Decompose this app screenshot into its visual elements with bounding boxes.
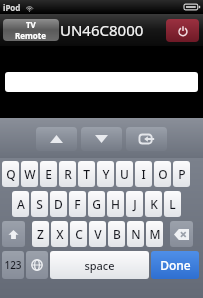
staticText: iPod: [3, 2, 21, 13]
button[interactable]: T: [78, 161, 95, 187]
button[interactable]: G: [88, 191, 105, 217]
staticText: F: [74, 196, 81, 212]
button[interactable]: Backspace: [170, 221, 193, 247]
staticText: Z: [37, 226, 44, 242]
button[interactable]: R: [59, 161, 76, 187]
button[interactable]: U: [116, 161, 133, 187]
button[interactable]: 123: [2, 251, 24, 279]
button[interactable]: C: [70, 221, 87, 247]
staticText: Q: [6, 166, 16, 182]
button[interactable]: I: [135, 161, 152, 187]
button[interactable]: Q: [2, 161, 19, 187]
staticText: H: [111, 196, 120, 212]
staticText: S: [36, 196, 43, 212]
button[interactable]: A: [12, 191, 29, 217]
button[interactable]: Next field: [81, 127, 122, 151]
button[interactable]: M: [146, 221, 163, 247]
button[interactable]: K: [145, 191, 162, 217]
button[interactable]: [5, 72, 198, 92]
button[interactable]: Shift: [2, 221, 25, 247]
staticText: P: [178, 166, 186, 182]
button[interactable]: P: [173, 161, 190, 187]
button[interactable]: S: [31, 191, 48, 217]
staticText: E: [45, 166, 52, 182]
button[interactable]: D: [50, 191, 67, 217]
staticText: 123: [4, 258, 22, 272]
button[interactable]: E: [40, 161, 57, 187]
staticText: L: [169, 196, 176, 212]
staticText: O: [158, 166, 168, 182]
staticText: B: [113, 226, 121, 242]
staticText: N: [131, 226, 141, 242]
staticText: C: [75, 226, 83, 242]
button[interactable]: F: [69, 191, 86, 217]
button[interactable]: O: [154, 161, 171, 187]
staticText: TV: [26, 19, 36, 30]
button[interactable]: Done: [151, 251, 199, 279]
staticText: U: [120, 166, 129, 182]
button[interactable]: space: [50, 251, 149, 279]
staticText: K: [150, 196, 158, 212]
staticText: X: [56, 226, 64, 242]
staticText: V: [94, 226, 102, 242]
button[interactable]: H: [107, 191, 124, 217]
staticText: T: [83, 166, 90, 182]
staticText: G: [92, 196, 101, 212]
button[interactable]: L: [164, 191, 181, 217]
button[interactable]: Z: [32, 221, 49, 247]
button[interactable]: Previous field: [36, 127, 77, 151]
button[interactable]: Y: [97, 161, 114, 187]
button[interactable]: TV: [3, 19, 59, 41]
staticText: I: [141, 166, 146, 182]
staticText: W: [24, 166, 36, 182]
button[interactable]: J: [126, 191, 143, 217]
button[interactable]: N: [127, 221, 144, 247]
button[interactable]: Power: [166, 19, 199, 42]
button[interactable]: B: [108, 221, 125, 247]
button[interactable]: Next keyboard: [26, 251, 48, 279]
button[interactable]: V: [89, 221, 106, 247]
staticText: J: [133, 196, 137, 212]
button[interactable]: X: [51, 221, 68, 247]
staticText: space: [84, 258, 115, 273]
staticText: A: [17, 196, 25, 212]
staticText: M: [149, 226, 161, 242]
staticText: Y: [102, 166, 110, 182]
staticText: D: [54, 196, 63, 212]
staticText: Remote: [15, 30, 47, 41]
button[interactable]: W: [21, 161, 38, 187]
button[interactable]: Hide keyboard: [126, 127, 167, 151]
staticText: R: [64, 166, 72, 182]
staticText: UN46C8000: [60, 20, 144, 40]
staticText: Done: [160, 257, 191, 273]
